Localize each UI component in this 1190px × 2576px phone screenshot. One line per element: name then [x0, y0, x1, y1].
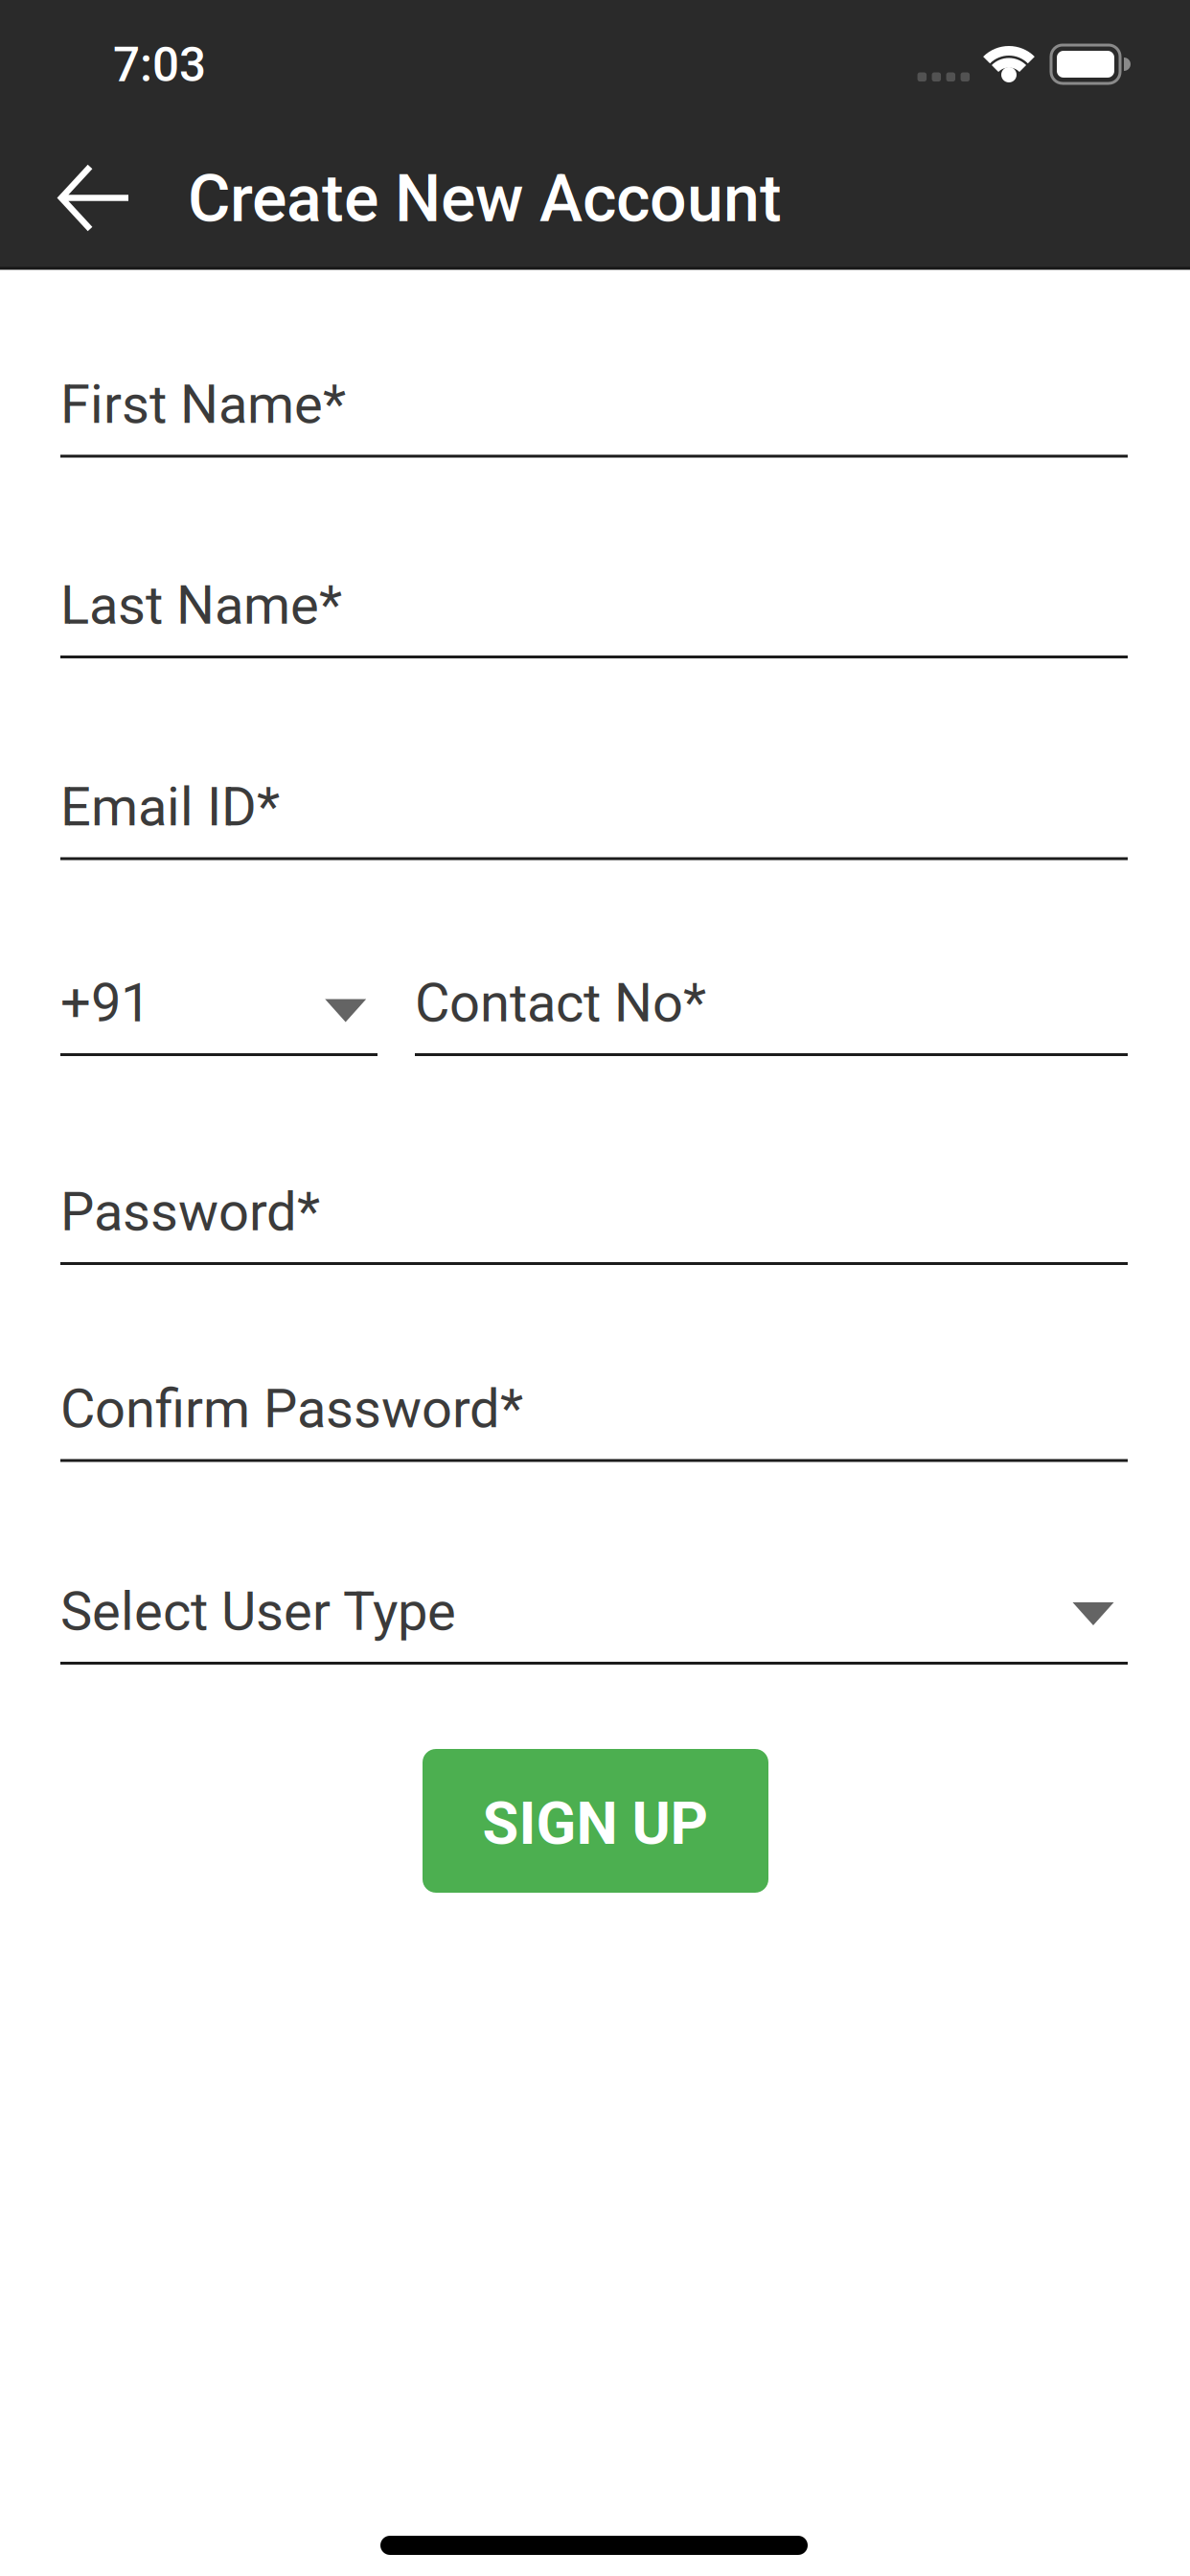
staticText: Create New Account [188, 162, 782, 236]
button[interactable]: Email ID* [60, 747, 1128, 862]
button[interactable]: Last Name* [60, 545, 1128, 660]
button[interactable]: Confirm Password* [60, 1348, 1128, 1463]
button[interactable]: +91 [60, 943, 378, 1058]
staticText: Password* [60, 1181, 320, 1242]
button[interactable]: Password* [60, 1151, 1128, 1266]
staticText: First Name* [60, 374, 346, 435]
staticText: Last Name* [60, 575, 342, 636]
staticText: Email ID* [60, 776, 280, 838]
button[interactable]: Select User Type [60, 1551, 1128, 1666]
staticText: SIGN UP [482, 1790, 709, 1857]
staticText: Contact No* [415, 972, 706, 1034]
button[interactable]: Back [47, 150, 143, 246]
button[interactable]: Contact No* [415, 943, 1128, 1058]
staticText: Confirm Password* [60, 1378, 523, 1439]
staticText: 7:03 [113, 38, 206, 92]
button[interactable]: SIGN UP [423, 1749, 768, 1893]
staticText: Select User Type [60, 1581, 456, 1642]
button[interactable]: First Name* [60, 344, 1128, 459]
staticText: +91 [60, 972, 150, 1034]
